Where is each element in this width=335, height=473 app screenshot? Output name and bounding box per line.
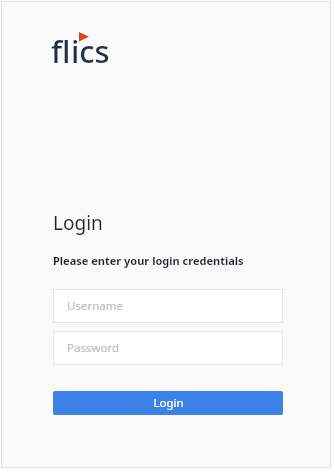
staticText: Login bbox=[53, 210, 103, 236]
button[interactable]: Password bbox=[53, 331, 283, 365]
staticText: Login bbox=[153, 395, 184, 411]
staticText: ics bbox=[71, 30, 110, 64]
other: flics logo bbox=[51, 30, 127, 64]
staticText: Username bbox=[67, 298, 123, 314]
button[interactable]: Login bbox=[53, 391, 283, 415]
button[interactable]: Username bbox=[53, 289, 283, 323]
staticText: fl bbox=[51, 30, 71, 64]
staticText: Please enter your login credentials bbox=[53, 253, 244, 268]
staticText: Password bbox=[67, 340, 120, 356]
